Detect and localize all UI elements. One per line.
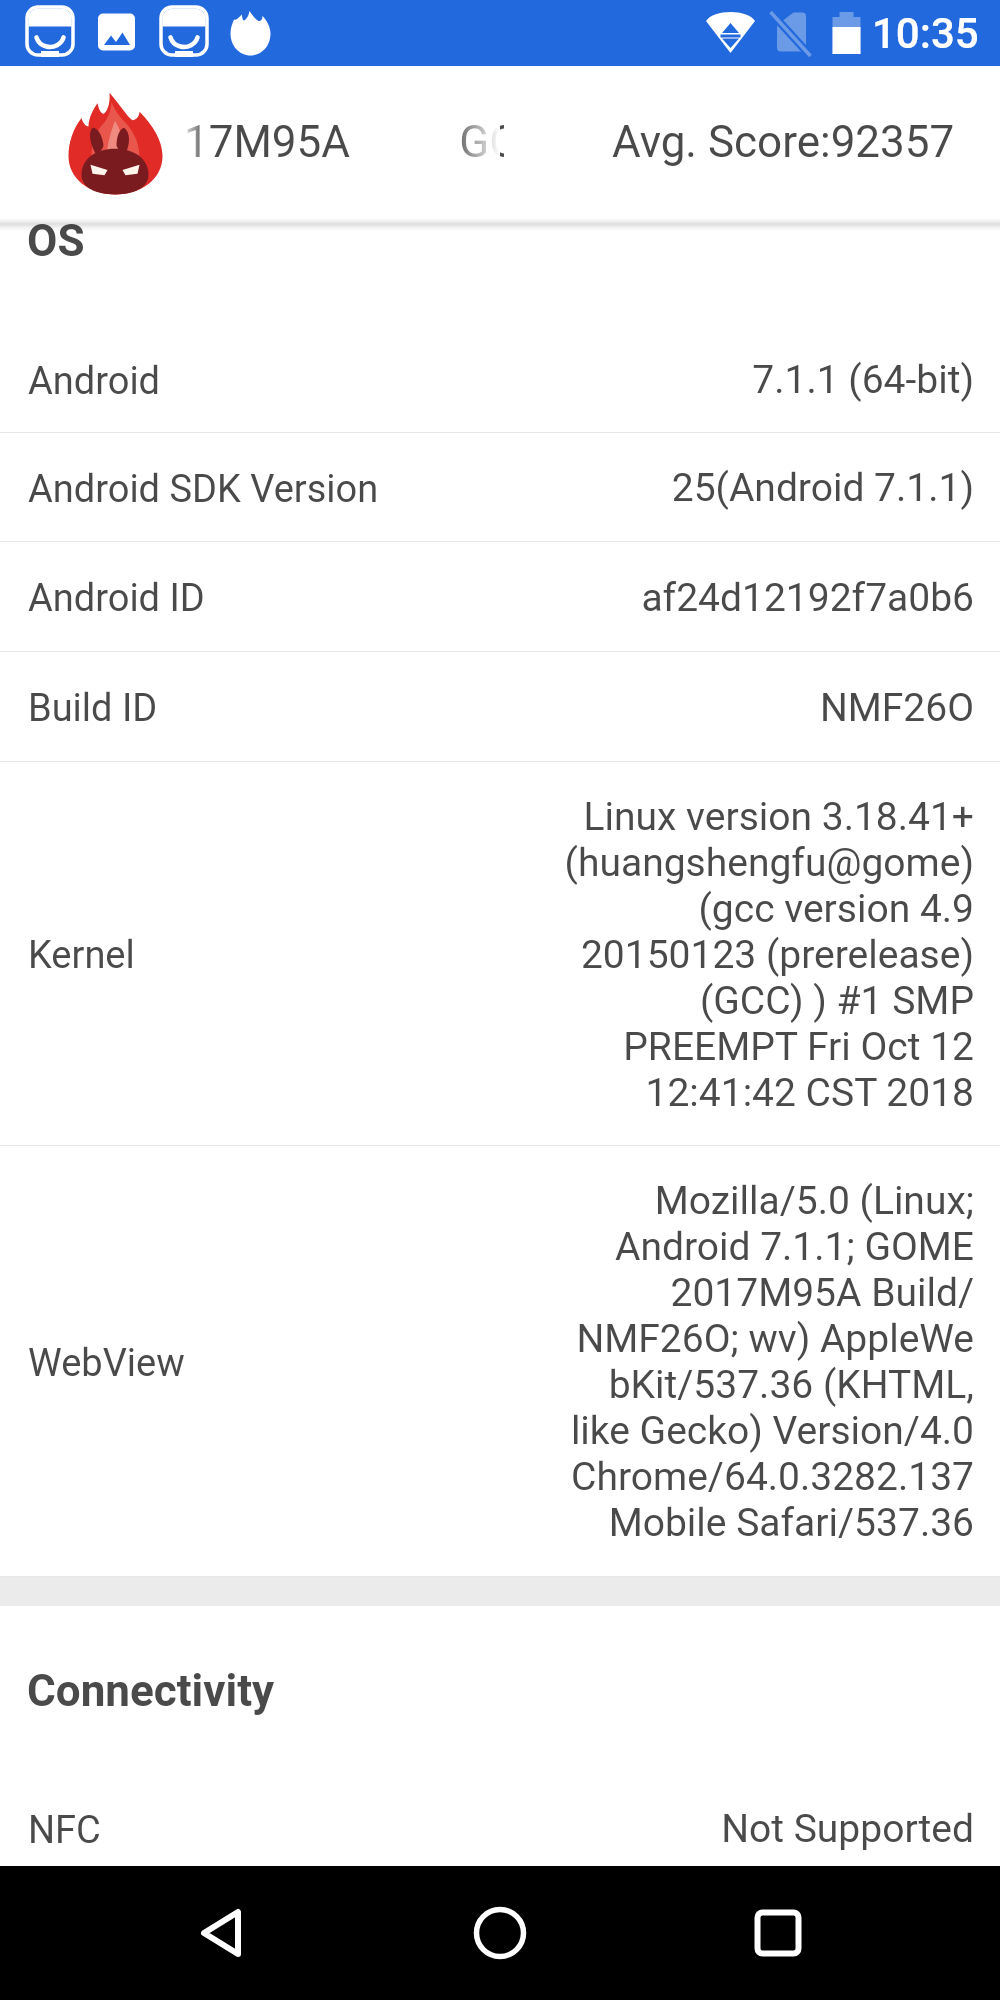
staticText: af24d12192f7a0b6 xyxy=(544,575,974,621)
staticText: OS xyxy=(27,215,85,267)
staticText: Connectivity xyxy=(27,1665,275,1717)
button[interactable]: Android xyxy=(0,326,1000,433)
staticText: Android SDK Version xyxy=(28,467,379,512)
staticText: NMF26O xyxy=(544,685,974,731)
button[interactable]: Build ID xyxy=(0,652,1000,762)
staticText: WebView xyxy=(28,1341,185,1386)
staticText: 25(Android 7.1.1) xyxy=(544,465,974,511)
button[interactable]: Android SDK Version xyxy=(0,433,1000,542)
button[interactable]: Recent apps xyxy=(708,1866,848,2000)
staticText: Android ID xyxy=(28,576,205,621)
staticText: 17M95A GOME 2017M95A xyxy=(184,116,504,168)
staticText: Kernel xyxy=(28,933,135,978)
button[interactable]: Kernel xyxy=(0,762,1000,1146)
staticText: 10:35 xyxy=(872,9,979,58)
staticText: NFC xyxy=(28,1808,101,1853)
staticText: 7.1.1 (64-bit) xyxy=(544,357,974,403)
button[interactable]: 17M95A GOME 2017M95A xyxy=(0,66,1000,218)
staticText: Build ID xyxy=(28,686,158,731)
button[interactable]: Home xyxy=(430,1866,570,2000)
staticText: Not Supported xyxy=(544,1806,974,1852)
button[interactable]: Back xyxy=(153,1866,293,2000)
staticText: Linux version 3.18.41+ (huangshengfu@gom… xyxy=(544,794,974,1116)
staticText: Avg. Score:92357 xyxy=(612,116,955,168)
staticText: Mozilla/5.0 (Linux; Android 7.1.1; GOME … xyxy=(544,1178,974,1546)
staticText: Android xyxy=(28,359,161,404)
button[interactable]: WebView xyxy=(0,1146,1000,1577)
button[interactable]: Android ID xyxy=(0,542,1000,652)
button[interactable]: NFC xyxy=(0,1773,1000,1884)
